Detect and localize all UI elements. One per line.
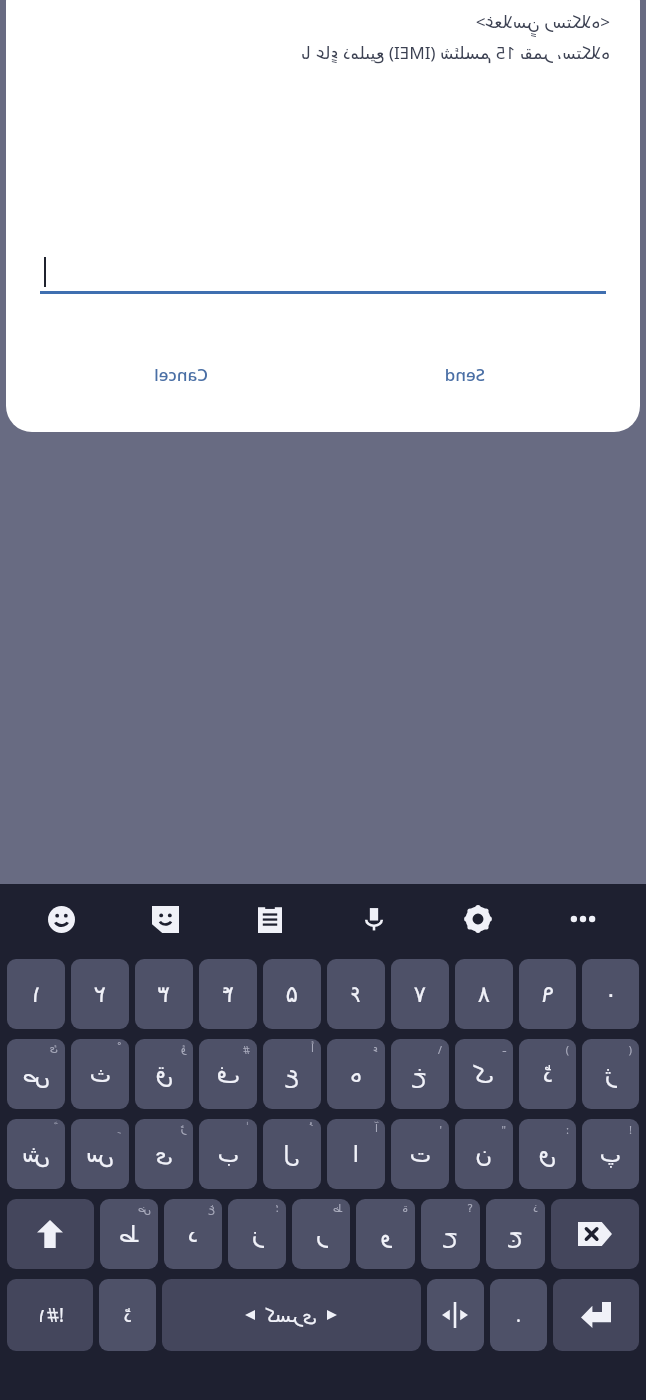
staticText: ب: [217, 1141, 239, 1168]
button[interactable]: emoji: [10, 884, 114, 954]
button[interactable]: Send: [323, 350, 606, 398]
button[interactable]: !: [582, 1119, 639, 1189]
staticText: و: [379, 1221, 391, 1248]
button[interactable]: ئ: [7, 1039, 65, 1109]
button[interactable]: آ: [327, 1119, 385, 1189]
staticText: ۴: [221, 981, 234, 1008]
staticText: ۷: [413, 981, 426, 1008]
button[interactable]: dots: [531, 884, 636, 954]
button[interactable]: ۶: [327, 959, 385, 1029]
button[interactable]: ِ: [71, 1119, 129, 1189]
button[interactable]: غ: [164, 1199, 222, 1269]
button[interactable]: ُ: [263, 1119, 321, 1189]
button[interactable]: ۳: [135, 959, 193, 1029]
button[interactable]: !#۱: [7, 1279, 93, 1351]
staticText: ۶: [349, 981, 362, 1008]
staticText: ؛: [275, 1202, 279, 1215]
staticText: ط: [118, 1221, 140, 1248]
staticText: ڈ: [542, 1061, 553, 1088]
button[interactable]: shift: [7, 1199, 94, 1269]
button[interactable]: ۰: [582, 959, 639, 1029]
button[interactable]: ؤ: [135, 1039, 193, 1109]
button[interactable]: ض: [100, 1199, 158, 1269]
button[interactable]: ة: [356, 1199, 415, 1269]
staticText: ة: [402, 1202, 408, 1215]
staticText: ئ: [49, 1042, 58, 1055]
staticText: ث: [89, 1061, 111, 1088]
button[interactable]: 4: [0, 276, 215, 348]
staticText: (: [628, 1042, 632, 1057]
button[interactable]: (: [582, 1039, 639, 1109]
button[interactable]: ۲: [71, 959, 129, 1029]
staticText: ۰: [604, 981, 617, 1008]
staticText: ج: [508, 1221, 523, 1248]
staticText: Send: [444, 363, 485, 386]
button[interactable]: mic: [322, 884, 426, 954]
button[interactable]: ۵: [263, 959, 321, 1029]
button[interactable]: arrows: [427, 1279, 484, 1351]
staticText: ؟: [467, 1202, 473, 1215]
button[interactable]: ": [455, 1119, 513, 1189]
button[interactable]: Cancel: [40, 350, 323, 398]
staticText: ق: [155, 1061, 173, 1088]
button[interactable]: enter: [553, 1279, 639, 1351]
staticText: أ: [310, 1042, 314, 1055]
button[interactable]: ۴: [199, 959, 257, 1029]
staticText: ل: [283, 1141, 300, 1168]
button[interactable]: ظ: [292, 1199, 350, 1269]
button[interactable]: sticker: [114, 884, 218, 954]
staticText: پ: [599, 1141, 621, 1168]
button[interactable]: back: [551, 1199, 639, 1269]
button[interactable]: ؟: [421, 1199, 480, 1269]
button[interactable]: ؛: [228, 1199, 286, 1269]
button[interactable]: 5: [215, 276, 430, 348]
staticText: ن: [475, 1141, 492, 1168]
button[interactable]: clip: [218, 884, 322, 954]
button[interactable]: أ: [263, 1039, 321, 1109]
staticText: ء: [372, 1042, 378, 1055]
button[interactable]: \: [391, 1039, 449, 1109]
staticText: <غعلاسنٍ رستكلاه>: [36, 10, 610, 33]
button[interactable]: ء: [327, 1039, 385, 1109]
button[interactable]: ْ: [71, 1039, 129, 1109]
staticText: ۳: [157, 981, 170, 1008]
button[interactable]: .: [490, 1279, 547, 1351]
button[interactable]: :: [519, 1119, 576, 1189]
staticText: ه: [349, 1061, 362, 1088]
staticText: ـ: [502, 1042, 506, 1055]
staticText: 6: [526, 285, 549, 339]
staticText: ز: [251, 1221, 263, 1248]
button[interactable]: 6: [430, 276, 646, 348]
button[interactable]: #: [199, 1039, 257, 1109]
button[interactable]: ڑ: [135, 1119, 193, 1189]
button[interactable]: ؓ: [7, 1119, 65, 1189]
staticText: ژ: [604, 1061, 616, 1088]
button[interactable]: ۱: [7, 959, 65, 1029]
button[interactable]: ۸: [455, 959, 513, 1029]
button[interactable]: ۹: [519, 959, 576, 1029]
button[interactable]: کسری: [162, 1279, 421, 1351]
staticText: \: [437, 1042, 442, 1057]
button[interactable]: ): [519, 1039, 576, 1109]
staticText: خ: [412, 1061, 427, 1088]
button[interactable]: ڈ: [99, 1279, 156, 1351]
staticText: Cancel: [154, 363, 208, 386]
button[interactable]: gear: [426, 884, 531, 954]
staticText: ڈ: [123, 1304, 132, 1326]
staticText: ض: [137, 1202, 151, 1215]
button[interactable]: ۷: [391, 959, 449, 1029]
button[interactable]: ٰ: [199, 1119, 257, 1189]
button[interactable]: ': [391, 1119, 449, 1189]
button[interactable]: ـ: [455, 1039, 513, 1109]
button[interactable]: ذ: [486, 1199, 545, 1269]
staticText: ڑ: [180, 1122, 186, 1135]
